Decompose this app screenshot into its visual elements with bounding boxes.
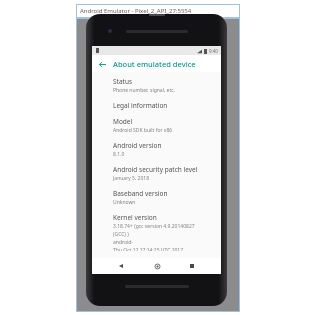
button[interactable]: Android security patch level [113,165,215,189]
button[interactable]: Back [95,57,109,71]
button[interactable]: Kernel version [113,213,215,258]
staticText: Thu Oct 12 17:14:25 UTC 2017 [113,247,184,251]
button[interactable]: Legal information [113,101,215,117]
staticText: Android SDK built for x86 [113,127,173,134]
button[interactable]: Android Emulator - Pixel_2_API_27:5554 [76,4,240,18]
staticText: Kernel version [113,213,157,222]
staticText: Legal information [113,101,168,110]
staticText: About emulated device [113,59,196,69]
staticText: Android Emulator - Pixel_2_API_27:5554 [80,7,192,15]
staticText: Model [113,117,133,126]
staticText: android-build@wpee16.mtv.corp.google.com… [113,239,215,246]
staticText: Unknown [113,199,136,206]
button[interactable]: Android version [113,141,215,165]
button[interactable]: Recent apps [185,259,199,273]
staticText: (GCC) ) [113,231,129,238]
button[interactable]: Model [113,117,215,141]
staticText: Status [113,77,133,86]
staticText: Baseband version [113,189,168,198]
staticText: January 5, 2018 [113,175,150,182]
staticText: Android version [113,141,162,150]
staticText: Phone number, signal, etc. [113,87,175,94]
button[interactable]: Home [150,259,164,273]
button[interactable]: Baseband version [113,189,215,213]
staticText: 8.1.0 [113,151,125,158]
button[interactable]: Back [114,259,128,273]
button[interactable]: Status [113,77,215,101]
staticText: 3.18.74+ (gcc version 4.9.20140827 (prer… [113,223,215,230]
staticText: Android security patch level [113,165,198,174]
staticText: 9:40 [209,48,218,54]
